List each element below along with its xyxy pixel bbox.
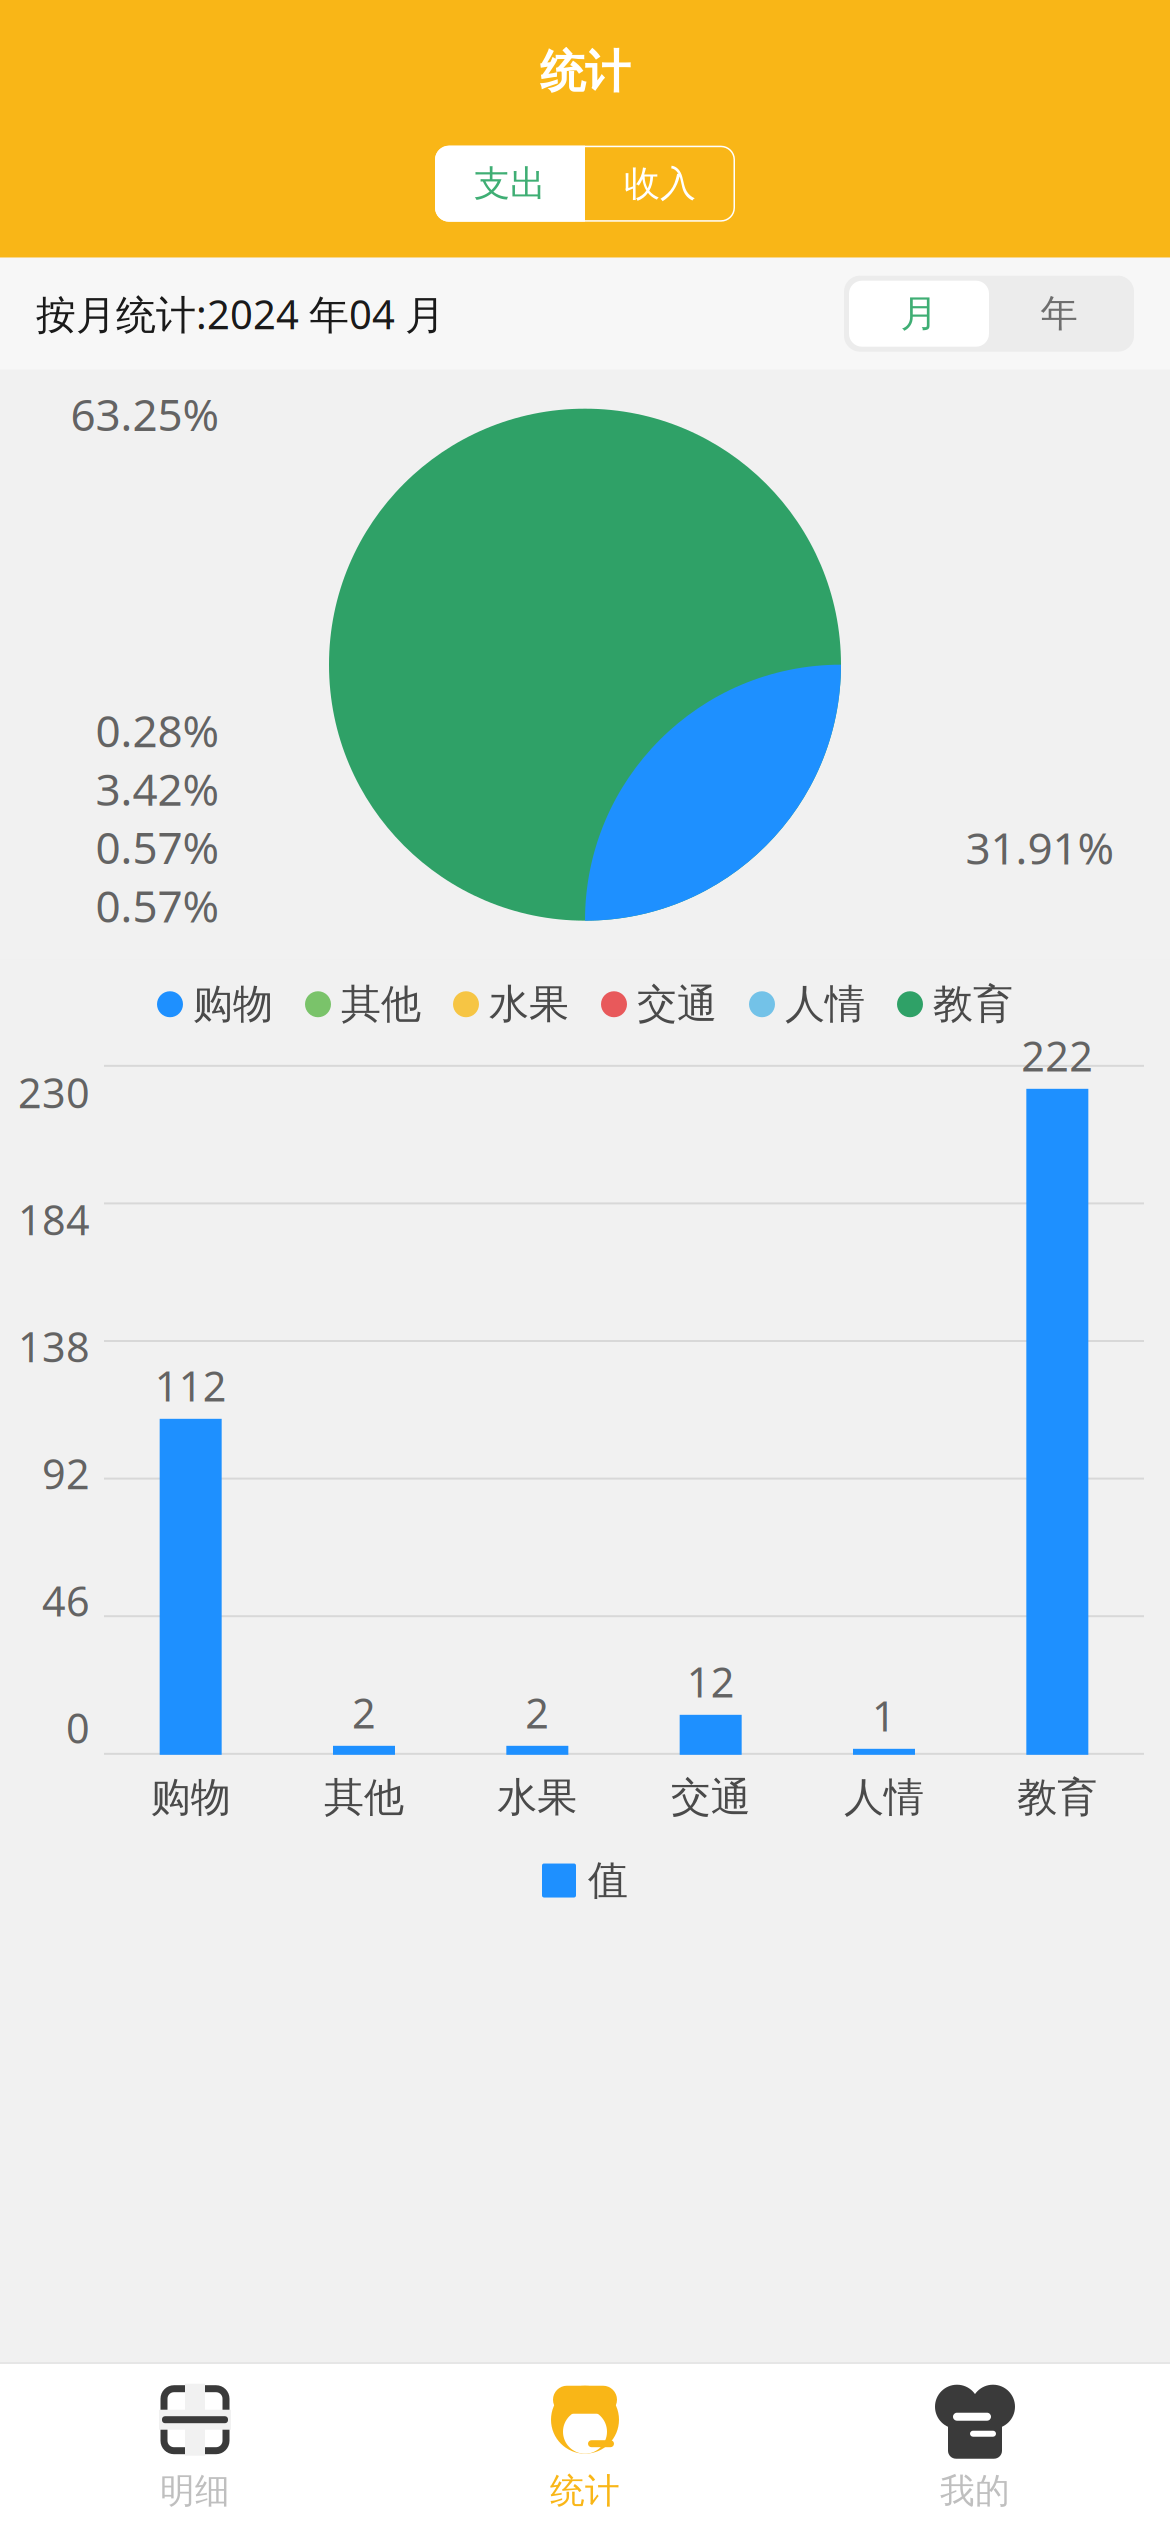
button[interactable]: 统计 xyxy=(390,2368,780,2528)
staticText: 138 xyxy=(18,1319,90,1374)
staticText: 教育 xyxy=(933,980,1013,1029)
staticText: 63.25% xyxy=(70,385,219,443)
staticText: 112 xyxy=(155,1358,227,1413)
button[interactable]: 收入 xyxy=(585,146,735,222)
staticText: 我的 xyxy=(940,2470,1010,2512)
button[interactable]: 月 xyxy=(849,281,989,347)
staticText: 222 xyxy=(1021,1028,1093,1083)
staticText: 教育 xyxy=(1017,1773,1097,1822)
staticText: 购物 xyxy=(151,1773,231,1822)
staticText: 2 xyxy=(525,1685,549,1740)
staticText: 其他 xyxy=(341,980,421,1029)
staticText: 明细 xyxy=(160,2470,230,2512)
button[interactable]: 明细 xyxy=(0,2368,390,2528)
staticText: 92 xyxy=(42,1446,90,1501)
staticText: 年 xyxy=(1040,291,1077,337)
staticText: 水果 xyxy=(497,1773,577,1822)
staticText: 184 xyxy=(18,1192,90,1247)
button[interactable]: 支出 xyxy=(435,146,585,222)
staticText: 46 xyxy=(42,1573,90,1628)
button[interactable]: 年 xyxy=(989,281,1129,347)
staticText: 0.28% xyxy=(95,701,219,759)
staticText: 1 xyxy=(872,1688,896,1743)
staticText: 月 xyxy=(900,291,937,337)
staticText: 12 xyxy=(687,1654,735,1709)
button[interactable]: 我的 xyxy=(780,2368,1170,2528)
staticText: 人情 xyxy=(844,1773,924,1822)
staticText: 值 xyxy=(588,1856,628,1905)
staticText: 2 xyxy=(352,1685,376,1740)
staticText: 支出 xyxy=(474,162,546,206)
staticText: 统计 xyxy=(550,2470,620,2512)
staticText: 0.57% xyxy=(95,818,219,876)
staticText: 31.91% xyxy=(965,818,1114,877)
staticText: 0.57% xyxy=(95,876,219,935)
staticText: 交通 xyxy=(637,980,717,1029)
staticText: 3.42% xyxy=(95,759,219,818)
staticText: 交通 xyxy=(671,1773,751,1822)
staticText: 水果 xyxy=(489,980,569,1029)
staticText: 购物 xyxy=(193,980,273,1029)
staticText: 按月统计:2024 年04 月 xyxy=(36,287,445,340)
staticText: 其他 xyxy=(324,1773,404,1822)
staticText: 0 xyxy=(66,1700,90,1755)
staticText: 统计 xyxy=(540,44,630,100)
staticText: 人情 xyxy=(785,980,865,1029)
staticText: 230 xyxy=(18,1065,90,1120)
staticText: 收入 xyxy=(624,162,696,206)
